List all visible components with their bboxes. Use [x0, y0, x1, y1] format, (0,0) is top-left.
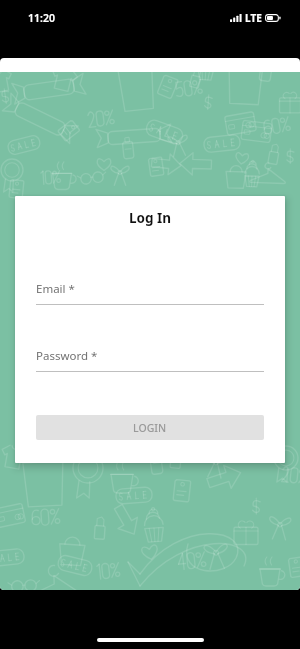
staticText: LTE [245, 11, 262, 25]
staticText: LOGIN [133, 421, 167, 435]
staticText: Email * [36, 281, 75, 297]
staticText: 11:20 [28, 11, 55, 25]
staticText: Log In [15, 209, 285, 227]
staticText: Password * [36, 348, 98, 364]
button[interactable]: LOGIN [36, 415, 264, 440]
